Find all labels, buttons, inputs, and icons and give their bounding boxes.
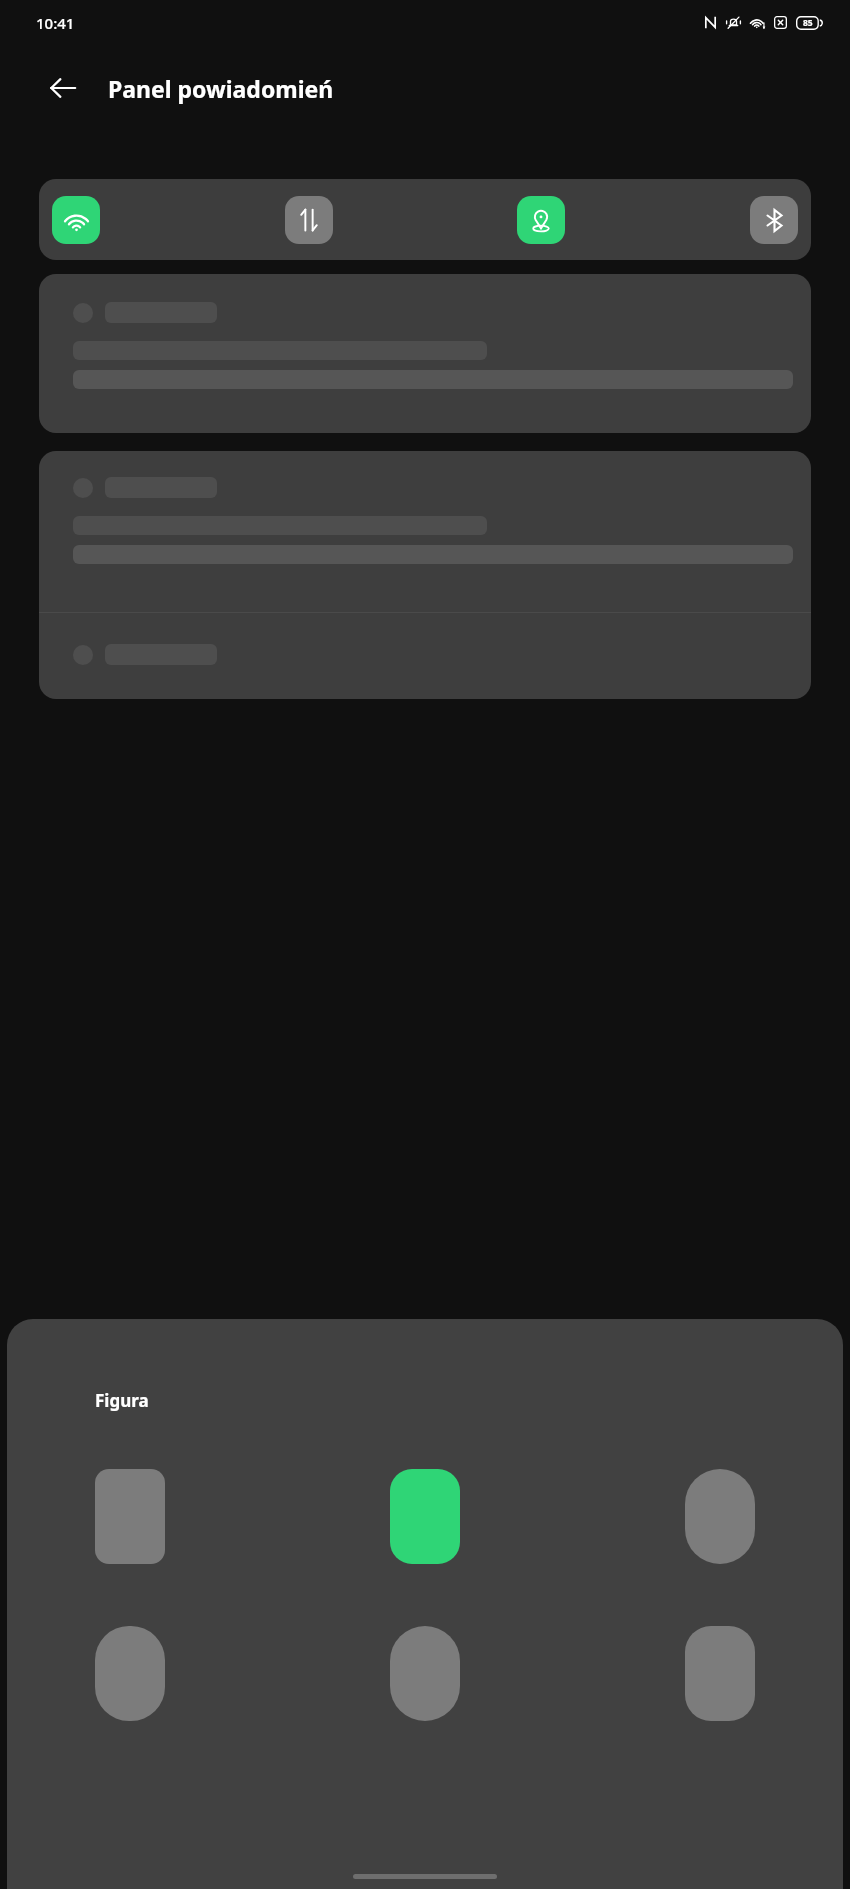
button[interactable]: Location bbox=[517, 196, 565, 244]
staticText: Figura bbox=[95, 1389, 149, 1412]
button[interactable]: Back bbox=[40, 65, 86, 111]
staticText: Panel powiadomień bbox=[108, 73, 334, 104]
button[interactable]: Shape option 2 bbox=[390, 1626, 460, 1721]
button[interactable] bbox=[39, 451, 811, 699]
button[interactable]: Shape option 3 bbox=[685, 1626, 755, 1721]
staticText: 85 bbox=[803, 17, 813, 29]
button[interactable]: Shape option 1 bbox=[95, 1469, 165, 1564]
button[interactable]: Shape option 3 bbox=[685, 1469, 755, 1564]
button[interactable]: Bluetooth bbox=[750, 196, 798, 244]
button[interactable]: Mobile data bbox=[285, 196, 333, 244]
button[interactable]: Wi-Fi bbox=[52, 196, 100, 244]
button[interactable]: Shape option 2 bbox=[390, 1469, 460, 1564]
button[interactable] bbox=[39, 274, 811, 433]
staticText: 10:41 bbox=[36, 13, 75, 33]
button[interactable]: Shape option 1 bbox=[95, 1626, 165, 1721]
